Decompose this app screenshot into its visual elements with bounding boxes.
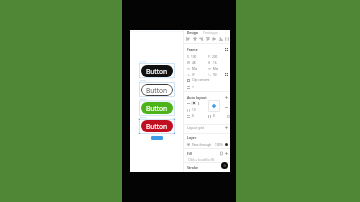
staticText: 200 [212, 55, 218, 59]
staticText: Stroke [187, 165, 199, 170]
staticText: Layer [187, 135, 197, 140]
staticText: 100% [215, 143, 223, 147]
staticText: Fill [187, 151, 192, 156]
staticText: 16 [213, 61, 217, 65]
button[interactable]: Align tool 1 [186, 37, 190, 41]
staticText: 48 [192, 61, 196, 65]
staticText: Button [146, 104, 168, 113]
staticText: W [187, 61, 190, 65]
staticText: 90 [213, 73, 217, 77]
button[interactable]: Prototype [203, 31, 218, 35]
staticText: Pass through [192, 143, 212, 147]
staticText: Auto layout [187, 95, 207, 100]
button[interactable]: Align tool 7 [225, 37, 229, 41]
button[interactable]: Align tool 4 [206, 37, 210, 41]
staticText: 8 [213, 114, 215, 118]
button[interactable]: Button [141, 102, 173, 114]
staticText: × [192, 85, 194, 89]
staticText: ↘ [187, 73, 190, 77]
button[interactable]: Design [187, 31, 198, 35]
staticText: 10 [192, 108, 196, 112]
staticText: Button [146, 67, 168, 76]
staticText: Click + to add a fill [188, 158, 215, 162]
staticText: Prototype [203, 31, 218, 35]
staticText: Clip content [192, 78, 210, 82]
staticText: Design [187, 31, 198, 35]
staticText: H [208, 61, 211, 65]
staticText: ⤡ [208, 74, 211, 77]
staticText: 8 [192, 114, 194, 118]
staticText: Frame [187, 47, 198, 52]
button[interactable]: Alignment grid [208, 100, 220, 112]
button[interactable]: Button [141, 84, 173, 96]
button[interactable]: Align tool 2 [193, 37, 197, 41]
staticText: ⟲ [208, 67, 211, 71]
staticText: 100 [191, 55, 197, 59]
staticText: Mix [213, 67, 219, 71]
staticText: Layout grid [187, 126, 205, 130]
staticText: Mix [192, 67, 198, 71]
staticText: 0° [192, 73, 196, 77]
button[interactable]: Vertical layout direction [191, 101, 196, 105]
staticText: Button [146, 86, 168, 95]
staticText: Y [208, 55, 210, 59]
button[interactable]: Clip content [187, 78, 210, 82]
button[interactable]: Layout grid [187, 125, 228, 130]
button[interactable]: Align tool 3 [199, 37, 203, 41]
staticText: ⟲ [187, 67, 190, 71]
button[interactable]: Align tool 5 [212, 37, 216, 41]
button[interactable]: Align tool 6 [219, 37, 223, 41]
staticText: Button [146, 122, 168, 131]
staticText: X [187, 55, 189, 59]
button[interactable]: Button [141, 120, 173, 132]
button[interactable]: Button [141, 65, 173, 77]
